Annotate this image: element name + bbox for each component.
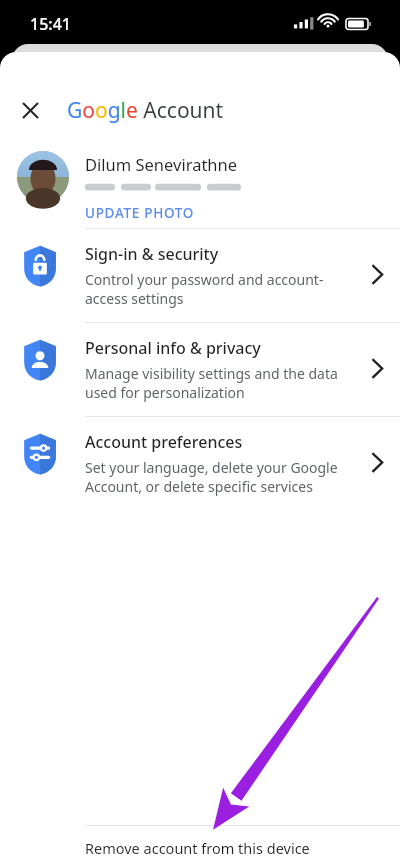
- staticText: Account preferences: [85, 431, 243, 453]
- staticText: UPDATE PHOTO: [85, 204, 195, 222]
- staticText: Sign-in & security: [85, 243, 219, 265]
- staticText: access settings: [85, 289, 184, 308]
- button[interactable]: UPDATE PHOTO: [85, 202, 195, 224]
- staticText: Personal info & privacy: [85, 337, 261, 359]
- button[interactable]: Personal info & privacy: [0, 323, 400, 416]
- button[interactable]: Sign-in & security: [0, 229, 400, 322]
- staticText: 15:41: [30, 13, 71, 35]
- staticText: Dilum Senevirathne: [85, 153, 238, 175]
- staticText: Set your language, delete your Google: [85, 458, 338, 477]
- button[interactable]: Close: [10, 90, 50, 130]
- staticText: Account, or delete specific services: [85, 477, 313, 496]
- staticText: Google Account: [67, 96, 224, 125]
- staticText: used for personalization: [85, 383, 245, 402]
- staticText: Remove account from this device: [85, 838, 310, 858]
- staticText: Control your password and account-: [85, 270, 324, 289]
- button[interactable]: Remove account from this device: [0, 826, 400, 866]
- staticText: Manage visibility settings and the data: [85, 364, 338, 383]
- button[interactable]: Account preferences: [0, 417, 400, 510]
